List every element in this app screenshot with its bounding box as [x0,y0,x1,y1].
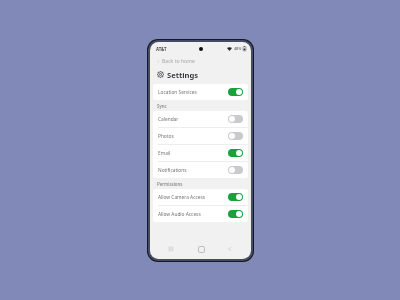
button[interactable]: Photos [153,128,248,144]
staticText: Photos [158,133,174,140]
button[interactable]: Back [222,241,238,257]
staticText: AT&T [156,46,167,52]
button[interactable]: Recents [163,241,179,257]
button[interactable]: Allow Audio Access [153,206,248,222]
button[interactable]: Allow Camera Access toggle [228,193,243,201]
staticText: Back to home [162,58,195,65]
button[interactable]: Back to home [150,55,251,67]
button[interactable]: Notifications [153,162,248,178]
button[interactable]: Calendar toggle [228,115,243,123]
button[interactable]: Calendar [153,111,248,127]
staticText: Email [158,150,171,157]
button[interactable]: Email [153,145,248,161]
button[interactable]: Allow Camera Access [153,189,248,205]
staticText: Location Services [158,89,197,96]
button[interactable]: Email toggle [228,149,243,157]
staticText: Allow Audio Access [158,211,201,218]
button[interactable]: Location Services toggle [228,88,243,96]
button[interactable]: Location Services [153,84,248,100]
staticText: Settings [167,70,199,80]
button[interactable]: Photos toggle [228,132,243,140]
staticText: Notifications [158,167,187,174]
staticText: 48% [234,46,242,51]
button[interactable]: Home [193,241,209,257]
other: Settings [157,71,164,78]
staticText: Permissions [157,181,183,187]
button[interactable]: Allow Audio Access toggle [228,210,243,218]
staticText: Sync [157,103,167,109]
staticText: Calendar [158,116,179,123]
button[interactable]: Notifications toggle [228,166,243,174]
staticText: Allow Camera Access [158,194,206,201]
